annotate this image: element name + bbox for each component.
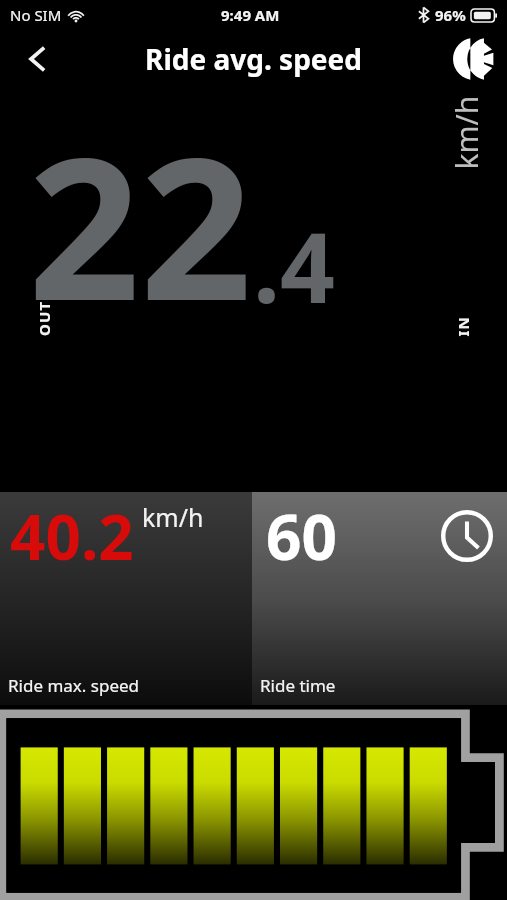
staticText: 9:49 AM [221, 5, 280, 25]
staticText: .4 [253, 200, 335, 331]
staticText: No SIM [10, 5, 62, 25]
staticText: Ride max. speed [8, 674, 140, 697]
staticText: 22 [28, 90, 253, 357]
staticText: 60 [266, 494, 337, 578]
button[interactable]: Battery level [0, 705, 507, 900]
staticText: km/h [142, 500, 204, 534]
button[interactable]: 40.2 [0, 492, 252, 705]
staticText: IN [452, 315, 472, 336]
other: Clock [441, 510, 493, 562]
staticText: Ride time [260, 674, 336, 697]
staticText: 96% [435, 5, 466, 25]
staticText: Ride avg. speed [145, 40, 362, 78]
button[interactable]: 22 [0, 88, 507, 492]
staticText: OUT [34, 300, 54, 336]
button[interactable]: 60 [252, 492, 507, 705]
button[interactable]: Back [0, 30, 76, 88]
button[interactable]: App logo [441, 30, 507, 88]
staticText: 40.2 [10, 494, 134, 578]
staticText: km/h [445, 95, 486, 169]
